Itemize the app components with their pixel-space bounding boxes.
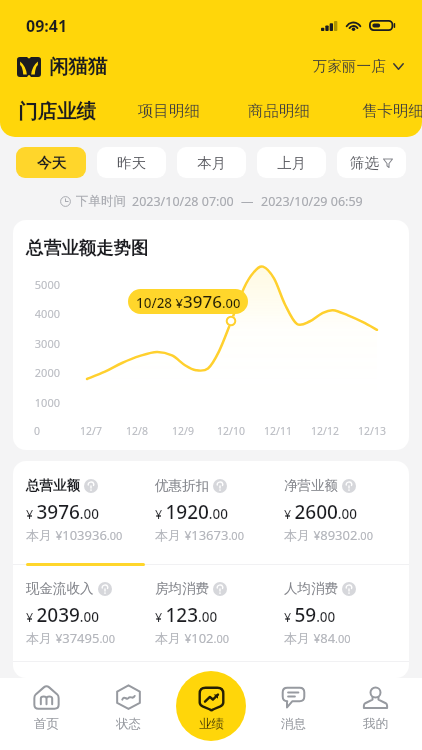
other: 我的 — [362, 684, 389, 710]
button[interactable]: 现金流收入 — [26, 580, 155, 658]
staticText: 本月 ¥89302.00 — [284, 526, 373, 544]
staticText: 总营业额走势图 — [26, 237, 149, 259]
button[interactable]: 门店业绩 — [16, 93, 98, 130]
staticText: 09:41 — [26, 15, 68, 37]
staticText: 2000 — [13, 365, 60, 380]
button[interactable]: 商品明细 — [246, 93, 312, 129]
staticText: 商品明细 — [248, 101, 310, 121]
staticText: 5000 — [13, 277, 60, 292]
staticText: 总营业额 — [26, 477, 80, 494]
button[interactable]: 首页 — [14, 684, 78, 732]
staticText: 3000 — [13, 336, 60, 351]
button[interactable]: 万家丽一店 — [309, 51, 408, 81]
button[interactable]: 售卡明细 — [360, 93, 422, 129]
staticText: 现金流收入 — [26, 580, 94, 597]
staticText: ¥ 123.00 — [155, 602, 218, 628]
staticText: 本月 ¥37495.00 — [26, 629, 115, 647]
staticText: 万家丽一店 — [313, 57, 386, 75]
staticText: 消息 — [281, 716, 306, 732]
staticText: 闲猫猫 — [49, 54, 108, 79]
staticText: 筛选 — [350, 154, 379, 172]
staticText: 12/13 — [352, 424, 392, 438]
staticText: 12/9 — [163, 424, 203, 438]
staticText: 12/11 — [258, 424, 298, 438]
staticText: 上月 — [277, 154, 306, 172]
button[interactable]: 优惠折扣 — [155, 477, 284, 555]
staticText: 本月 ¥102.00 — [155, 629, 230, 647]
button[interactable]: 上月 — [257, 147, 326, 178]
button[interactable]: 今天 — [16, 147, 86, 178]
staticText: 12/10 — [211, 424, 251, 438]
staticText: 昨天 — [117, 154, 146, 172]
staticText: 状态 — [116, 716, 141, 732]
staticText: ¥ 1920.00 — [155, 499, 228, 525]
staticText: ¥ 2039.00 — [26, 602, 99, 628]
staticText: 今天 — [37, 154, 66, 172]
staticText: 我的 — [363, 716, 388, 732]
button[interactable]: 本月 — [177, 147, 246, 178]
staticText: — — [241, 193, 254, 210]
staticText: 0 — [17, 424, 57, 438]
staticText: ¥ 3976.00 — [26, 499, 99, 525]
button[interactable]: 项目明细 — [136, 93, 202, 129]
staticText: ¥ 59.00 — [284, 602, 336, 628]
button[interactable]: 房均消费 — [155, 580, 284, 658]
staticText: 2023/10/28 07:00 — [132, 193, 234, 210]
staticText: 业绩 — [199, 716, 224, 732]
staticText: 本月 — [197, 154, 226, 172]
staticText: 下单时间 — [76, 193, 126, 209]
staticText: 首页 — [34, 716, 59, 732]
staticText: 10/28 ¥3976.00 — [136, 290, 241, 313]
button[interactable]: 总营业额 — [26, 477, 155, 555]
button[interactable]: 昨天 — [97, 147, 166, 178]
staticText: ¥ 2600.00 — [284, 499, 357, 525]
staticText: 房均消费 — [155, 580, 209, 597]
staticText: 本月 ¥13673.00 — [155, 526, 244, 544]
button[interactable]: 筛选 — [337, 147, 406, 178]
staticText: 门店业绩 — [18, 99, 96, 124]
other: 消息 — [280, 684, 307, 710]
staticText: 本月 ¥103936.00 — [26, 526, 123, 544]
button[interactable]: 净营业额 — [284, 477, 409, 555]
staticText: 12/7 — [71, 424, 111, 438]
button[interactable]: 状态 — [96, 684, 160, 732]
staticText: 12/8 — [117, 424, 157, 438]
staticText: 1000 — [13, 395, 60, 410]
button[interactable]: 业绩 — [176, 671, 246, 741]
staticText: 2023/10/29 06:59 — [261, 193, 363, 210]
button[interactable]: 人均消费 — [284, 580, 409, 658]
staticText: 人均消费 — [284, 580, 338, 597]
staticText: 优惠折扣 — [155, 477, 209, 494]
staticText: 4000 — [13, 306, 60, 321]
staticText: 本月 ¥84.00 — [284, 629, 351, 647]
other: 首页 — [33, 684, 60, 710]
staticText: 净营业额 — [284, 477, 338, 494]
button[interactable]: 消息 — [261, 684, 325, 732]
staticText: 项目明细 — [138, 101, 200, 121]
staticText: 售卡明细 — [362, 101, 422, 121]
other: 状态 — [115, 684, 142, 710]
button[interactable]: 我的 — [343, 684, 407, 732]
staticText: 12/12 — [305, 424, 345, 438]
